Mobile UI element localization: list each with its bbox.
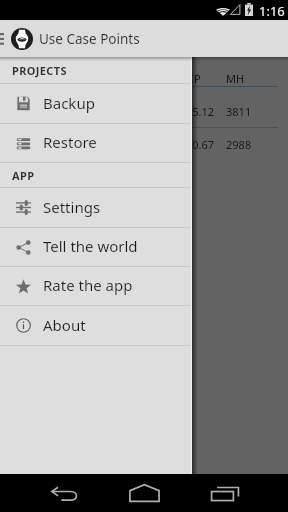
staticText: Rate the app <box>43 275 133 295</box>
staticText: Backup <box>43 93 95 113</box>
button[interactable]: About <box>0 306 192 346</box>
staticText: 10.67 <box>186 137 215 152</box>
staticText: Tell the world <box>43 236 138 256</box>
staticText: APP <box>12 168 35 183</box>
staticText: 1:16 <box>259 2 285 20</box>
staticText: Restore <box>43 132 97 152</box>
staticText: 15.12 <box>186 104 215 119</box>
staticText: PROJECTS <box>12 63 67 78</box>
staticText: Use Case Points <box>39 30 140 48</box>
staticText: 3811 <box>226 104 252 119</box>
button[interactable]: Back <box>32 474 96 512</box>
staticText: Settings <box>43 197 101 217</box>
staticText: Project one <box>14 104 73 119</box>
staticText: Project two <box>14 137 73 152</box>
button[interactable]: Settings <box>0 188 192 228</box>
button[interactable]: Rate the app <box>0 267 192 306</box>
button[interactable]: Open navigation drawer <box>0 20 10 57</box>
staticText: 2988 <box>226 137 252 152</box>
staticText: About <box>43 315 86 335</box>
button[interactable]: Backup <box>0 84 192 124</box>
staticText: UCP <box>179 71 201 86</box>
staticText: MH <box>226 71 245 86</box>
staticText: Name <box>14 71 46 86</box>
button[interactable]: Recent apps <box>192 474 256 512</box>
button[interactable]: Tell the world <box>0 228 192 267</box>
button[interactable]: Home <box>112 474 176 512</box>
button[interactable]: Restore <box>0 124 192 163</box>
